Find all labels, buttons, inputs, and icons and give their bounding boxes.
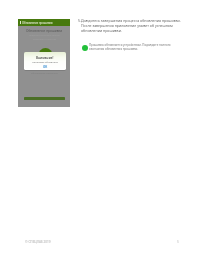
staticText: Обновление прошивки [22, 21, 53, 25]
staticText: ОК [43, 65, 48, 69]
staticText: 5 [177, 240, 179, 244]
staticText: Обновление завершено [31, 72, 58, 75]
staticText: Дождитесь завершения процесса обновления… [81, 18, 184, 33]
staticText: Прошивка обновлена [32, 60, 58, 63]
staticText: © СПЕЦЛАБ 2019 [25, 240, 51, 244]
staticText: 5. [78, 18, 81, 23]
staticText: Обновление прошивки [26, 29, 63, 33]
staticText: Внимание! [36, 56, 54, 60]
staticText: Прошивка обновляется устройством. Подожд… [89, 43, 173, 51]
button[interactable]: ОК [43, 65, 48, 69]
button[interactable]: Back [20, 21, 22, 24]
